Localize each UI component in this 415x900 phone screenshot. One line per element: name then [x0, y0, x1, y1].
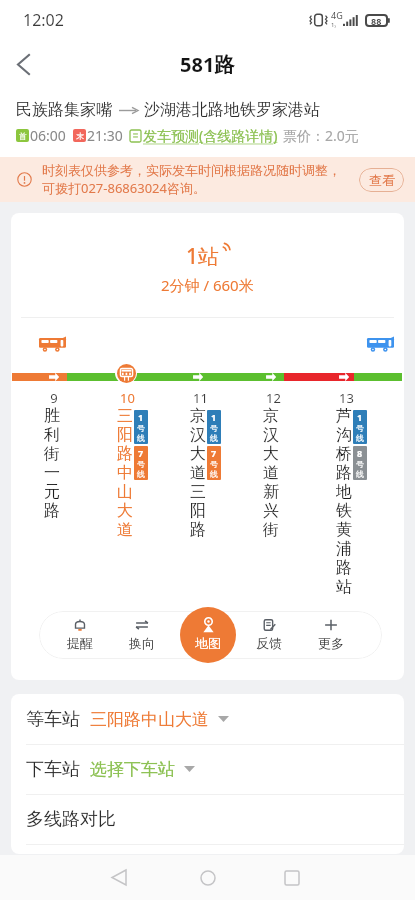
button[interactable]: 发车预测(含线路详情) [130, 126, 278, 145]
staticText: 路 [117, 444, 133, 463]
staticText: 21:30 [87, 126, 123, 145]
staticText: 站 [336, 577, 352, 596]
staticText: 路 [190, 520, 206, 539]
staticText: 提醒 [67, 635, 93, 651]
staticText: 首 [19, 131, 27, 141]
staticText: 1 [138, 411, 144, 423]
staticText: 下车站 [26, 758, 80, 781]
staticText: 中 [117, 463, 133, 482]
staticText: 新 [263, 482, 279, 501]
staticText: 阳 [117, 425, 133, 444]
staticText: 利 [44, 425, 60, 444]
staticText: 桥 [336, 444, 352, 463]
staticText: 末 [76, 131, 84, 141]
staticText: 11 [193, 389, 208, 407]
staticText: 查看 [369, 172, 395, 188]
staticText: 三 [190, 482, 206, 501]
staticText: 山 [117, 482, 133, 501]
staticText: 号 [137, 459, 145, 469]
button[interactable]: 更多 [303, 611, 359, 659]
staticText: 票价：2.0元 [283, 126, 359, 145]
staticText: 胜 [44, 406, 60, 425]
staticText: 大 [190, 444, 206, 463]
staticText: 大 [117, 501, 133, 520]
staticText: 浦 [336, 539, 352, 558]
staticText: 线 [210, 469, 218, 479]
staticText: 地 [336, 482, 352, 501]
staticText: 13 [339, 389, 354, 407]
staticText: 元 [44, 482, 60, 501]
staticText: 1₎ [331, 21, 336, 29]
staticText: 号 [210, 459, 218, 469]
staticText: 铁 [336, 501, 352, 520]
staticText: 沙湖港北路地铁罗家港站 [144, 100, 320, 120]
button[interactable]: 查看 [359, 168, 404, 192]
staticText: 9 [50, 389, 58, 407]
staticText: 7 [138, 447, 144, 459]
staticText: 发车预测(含线路详情) [143, 126, 278, 145]
staticText: 线 [356, 469, 364, 479]
button[interactable]: 提醒 [52, 611, 108, 659]
button[interactable]: Home [184, 855, 232, 900]
staticText: 号 [356, 423, 364, 433]
staticText: 道 [263, 463, 279, 482]
button[interactable]: 下车站 [11, 744, 404, 794]
button[interactable] [316, 389, 376, 579]
staticText: 京 [263, 406, 279, 425]
staticText: 线 [356, 433, 364, 443]
button[interactable]: 地图 [180, 607, 236, 663]
staticText: 线 [137, 469, 145, 479]
staticText: 7 [211, 447, 217, 459]
staticText: 选择下车站 [90, 759, 175, 780]
staticText: 换向 [129, 635, 155, 651]
staticText: 三 [117, 406, 133, 425]
staticText: 等车站 [26, 708, 80, 731]
staticText: 大 [263, 444, 279, 463]
button[interactable]: 换向 [114, 611, 170, 659]
staticText: 更多 [318, 635, 344, 651]
staticText: 12 [266, 389, 281, 407]
staticText: 沟 [336, 425, 352, 444]
staticText: 民族路集家嘴 [16, 100, 112, 120]
button[interactable]: 多线路对比 [11, 794, 404, 844]
staticText: 2分钟 / 660米 [161, 275, 254, 295]
staticText: 一 [44, 463, 60, 482]
staticText: 时刻表仅供参考，实际发车时间根据路况随时调整，可拨打027-86863024咨询… [42, 162, 353, 197]
staticText: 12:02 [23, 9, 64, 31]
staticText: 汉 [263, 425, 279, 444]
staticText: 号 [210, 423, 218, 433]
staticText: 街 [263, 520, 279, 539]
staticText: 道 [190, 463, 206, 482]
staticText: 号 [356, 459, 364, 469]
staticText: 多线路对比 [26, 808, 116, 831]
staticText: 芦 [336, 406, 352, 425]
staticText: 1 [211, 411, 217, 423]
staticText: 三阳路中山大道 [90, 709, 209, 730]
button[interactable] [243, 389, 303, 579]
staticText: 1站 [186, 242, 220, 271]
staticText: 1 [357, 411, 363, 423]
button[interactable]: Recent apps [268, 855, 316, 900]
staticText: 线 [137, 433, 145, 443]
staticText: 路 [44, 501, 60, 520]
button[interactable]: Back [0, 41, 46, 87]
button[interactable]: 反馈 [241, 611, 297, 659]
staticText: 581路 [180, 51, 235, 78]
staticText: 京 [190, 406, 206, 425]
staticText: 道 [117, 520, 133, 539]
staticText: 黄 [336, 520, 352, 539]
staticText: 兴 [263, 501, 279, 520]
button[interactable] [24, 389, 84, 579]
button[interactable] [97, 389, 157, 579]
staticText: 路 [336, 463, 352, 482]
staticText: 汉 [190, 425, 206, 444]
staticText: 反馈 [256, 635, 282, 651]
button[interactable]: Back [95, 855, 143, 900]
staticText: 地图 [195, 635, 221, 651]
staticText: 88 [371, 15, 382, 27]
button[interactable]: 等车站 [11, 694, 404, 744]
staticText: 号 [137, 423, 145, 433]
staticText: 路 [336, 558, 352, 577]
staticText: 10 [120, 389, 135, 407]
button[interactable] [170, 389, 230, 579]
